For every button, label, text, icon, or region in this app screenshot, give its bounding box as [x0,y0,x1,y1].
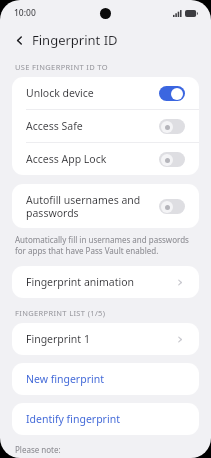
button[interactable]: Autofill usernames and passwords [12,184,199,228]
staticText: Autofill usernames and passwords [26,193,151,220]
button[interactable]: Back [8,29,30,51]
staticText: Fingerprint ID [32,31,118,49]
button[interactable]: Off [159,199,185,214]
button[interactable]: Fingerprint animation [12,266,199,298]
staticText: Access App Lock [26,152,151,166]
staticText: Please note: [15,444,61,455]
staticText: New fingerprint [26,372,185,386]
staticText: Unlock device [26,86,151,100]
staticText: Automatically fill in usernames and pass… [15,234,189,256]
button[interactable]: Access Safe [12,110,199,142]
staticText: FINGERPRINT LIST (1/5) [15,308,106,318]
staticText: Fingerprint 1 [26,332,176,346]
button[interactable]: Off [159,152,185,167]
button[interactable]: Access App Lock [12,143,199,175]
button[interactable]: On [159,86,185,101]
staticText: 10:00 [14,7,36,19]
staticText: USE FINGERPRINT ID TO [15,62,108,72]
staticText: Fingerprint animation [26,275,176,289]
button[interactable]: New fingerprint [12,363,199,395]
staticText: Access Safe [26,119,151,133]
staticText: 1. Press firmly on the screen when enrol… [15,457,190,458]
staticText: Identify fingerprint [26,412,185,426]
button[interactable]: Fingerprint 1 [12,323,199,355]
button[interactable]: Off [159,119,185,134]
button[interactable]: Identify fingerprint [12,403,199,435]
button[interactable]: Unlock device [12,77,199,109]
